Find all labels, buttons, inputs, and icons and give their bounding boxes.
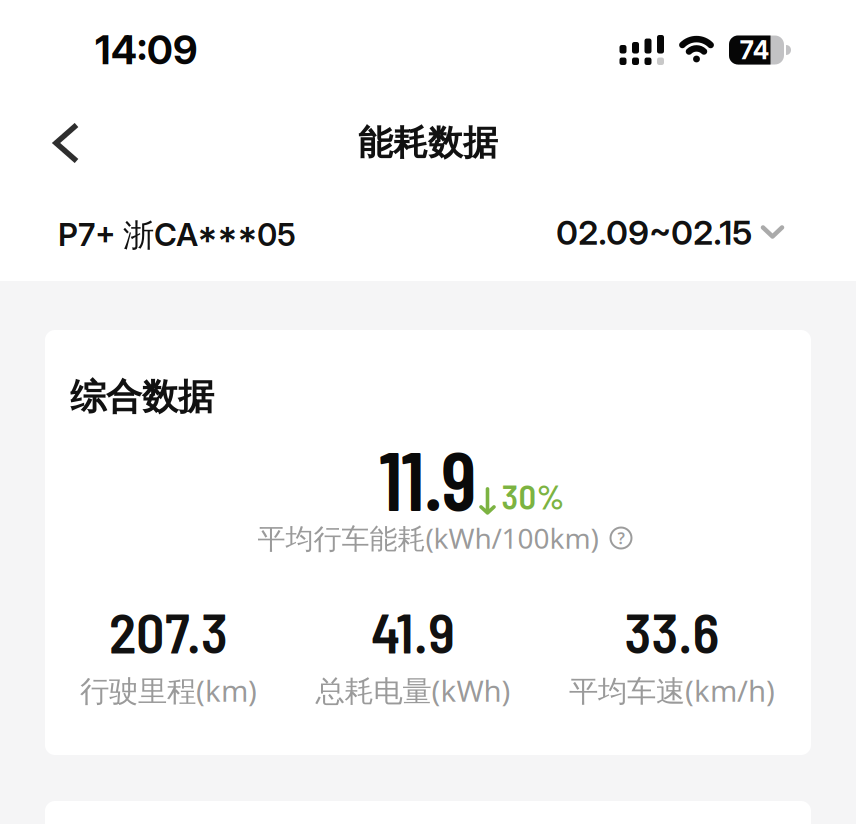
- staticText: 30%: [501, 475, 564, 516]
- staticText: 综合数据: [70, 375, 214, 419]
- staticText: 14:09: [95, 26, 197, 74]
- staticText: P7+ 浙CA***05: [58, 216, 296, 255]
- staticText: 11.9: [379, 428, 476, 527]
- staticText: 总耗电量(kWh): [315, 671, 510, 710]
- staticText: 能耗数据: [358, 122, 498, 164]
- staticText: 平均车速(km/h): [569, 671, 775, 710]
- staticText: 207.3: [109, 598, 228, 665]
- staticText: ?: [617, 527, 624, 549]
- staticText: 33.6: [624, 598, 719, 665]
- button[interactable]: Select date range: [556, 212, 784, 253]
- staticText: 行驶里程(km): [80, 671, 257, 710]
- staticText: 02.09~02.15: [556, 212, 752, 253]
- staticText: 41.9: [371, 598, 455, 665]
- staticText: 74: [739, 35, 769, 65]
- staticText: 平均行车能耗(kWh/100km): [257, 519, 598, 557]
- button[interactable]: Back: [0, 113, 80, 173]
- button[interactable]: About this metric: [609, 526, 632, 549]
